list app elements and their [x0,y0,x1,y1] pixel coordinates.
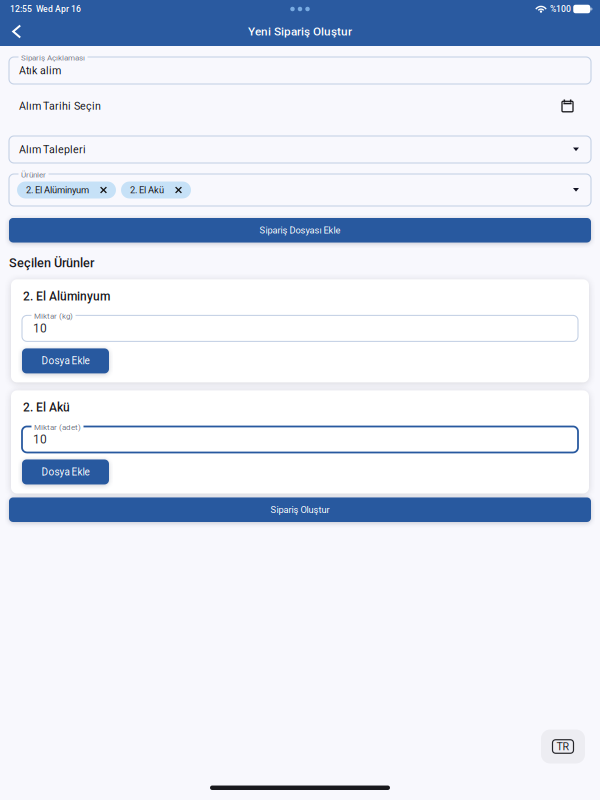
staticText: 2. El Alüminyum [23,289,110,303]
staticText: Miktar (adet) [34,422,81,432]
staticText: Alım Tarihi Seçin [19,100,101,112]
staticText: Wed Apr 16 [36,4,81,14]
staticText: 10 [33,321,47,335]
staticText: %100 [550,4,571,14]
staticText: 2. El Akü [23,400,70,414]
button[interactable]: Sipariş Oluştur [9,497,591,522]
staticText: Ürünler [21,170,46,179]
button[interactable]: Alım Tarihi Seçin [9,90,591,122]
staticText: Atık alim [19,64,61,77]
button[interactable]: Alım Talepleri [9,136,591,163]
staticText: Sipariş Dosyası Ekle [259,225,340,236]
button[interactable]: Dosya Ekle [22,348,109,373]
staticText: Miktar (kg) [34,311,73,321]
staticText: 12:55 [10,4,32,14]
button[interactable]: Back [0,18,32,44]
button[interactable]: Keyboard language TR [541,729,585,763]
staticText: Yeni Sipariş Oluştur [248,25,352,38]
staticText: Alım Talepleri [19,143,86,156]
staticText: Sipariş Oluştur [270,504,329,515]
button[interactable]: Sipariş Dosyası Ekle [9,218,591,242]
staticText: Dosya Ekle [41,355,89,367]
staticText: Dosya Ekle [41,466,89,478]
button[interactable]: 2. El Alüminyum [17,181,116,198]
staticText: 10 [33,432,47,446]
button[interactable]: 2. El Akü [121,181,191,198]
staticText: Seçilen Ürünler [9,255,94,270]
staticText: TR [556,740,569,753]
staticText: 2. El Alüminyum [26,184,89,195]
staticText: Sipariş Açıklaması [21,53,85,62]
button[interactable]: Dosya Ekle [22,459,109,484]
staticText: 2. El Akü [130,184,164,195]
